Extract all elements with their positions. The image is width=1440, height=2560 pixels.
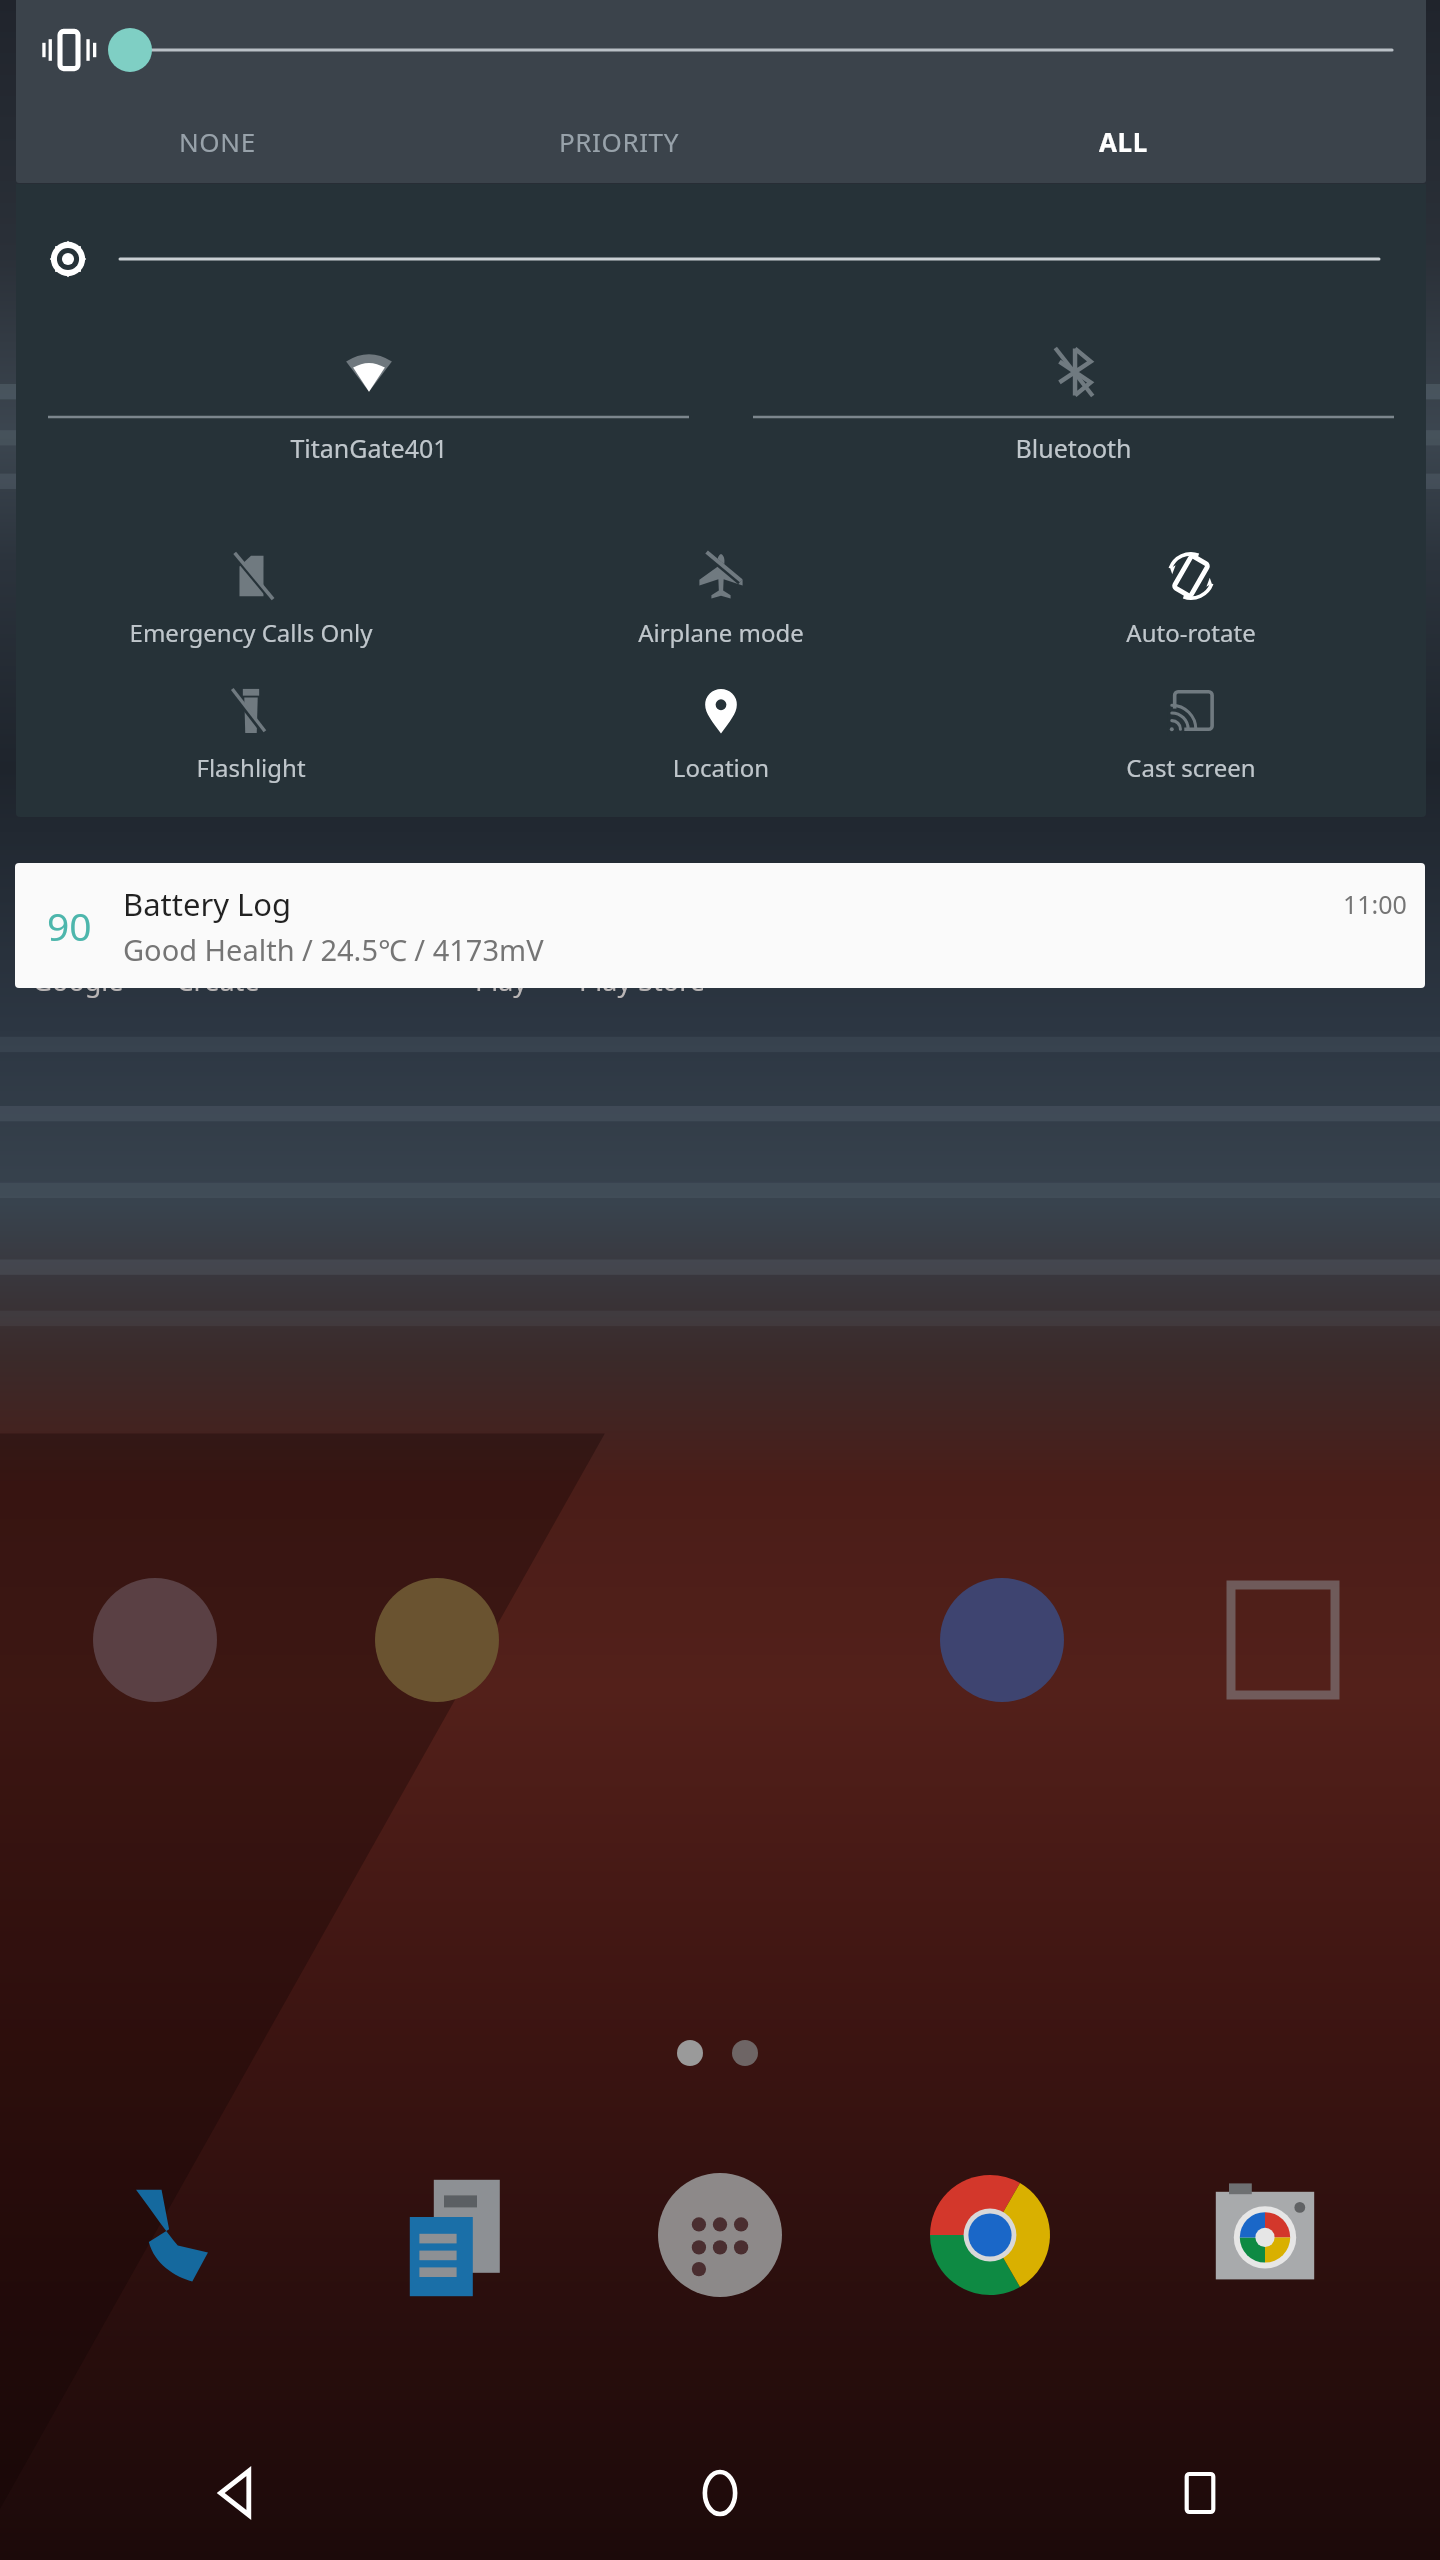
staticText: PRIORITY [559,124,679,159]
button[interactable]: TitanGate401 [16,334,721,544]
button[interactable]: PRIORITY [418,100,820,183]
button[interactable]: Cast screen [956,679,1426,814]
staticText: NONE [179,124,256,159]
staticText: Play Store [572,962,712,999]
staticText: Auto-rotate [958,616,1424,649]
staticText: Airplane mode [488,616,954,649]
staticText: 11:00 [1343,887,1407,921]
button[interactable]: Airplane mode [486,544,956,679]
button[interactable]: 90 [15,863,1425,988]
button[interactable]: Bluetooth [721,334,1426,544]
button[interactable]: Home [480,2425,960,2560]
staticText: Good Health / 24.5℃ / 4173mV [123,930,544,969]
staticText: ALL [1099,124,1148,159]
staticText: Location [488,751,954,784]
staticText: Create [148,962,288,999]
button[interactable] [16,184,1426,334]
staticText: 90 [47,899,92,952]
button[interactable] [112,0,1392,100]
staticText: Bluetooth [1015,431,1132,465]
staticText: Emergency Calls Only [18,616,484,649]
staticText: Battery Log [123,883,292,925]
button[interactable]: Ringer mode vibrate [26,7,112,93]
button[interactable]: Back [0,2425,480,2560]
button[interactable]: Recent apps [960,2425,1440,2560]
staticText: Play [431,962,571,999]
button[interactable]: Auto-rotate [956,544,1426,679]
staticText: Cast screen [958,751,1424,784]
button[interactable]: NONE [16,100,418,183]
button[interactable]: Flashlight [16,679,486,814]
staticText: Flashlight [18,751,484,784]
button[interactable]: Location [486,679,956,814]
button[interactable]: Emergency Calls Only [16,544,486,679]
staticText: TitanGate401 [290,431,448,465]
staticText: Google [8,962,148,999]
button[interactable]: ALL [820,100,1426,183]
